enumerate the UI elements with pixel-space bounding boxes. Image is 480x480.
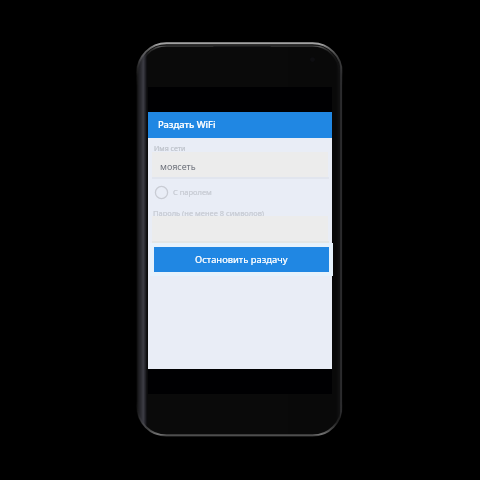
staticText: Остановить раздачу xyxy=(195,253,288,266)
staticText: Имя сети xyxy=(154,144,186,154)
button[interactable]: Остановить раздачу xyxy=(154,247,329,272)
staticText: Пароль (не менее 8 символов) xyxy=(153,208,265,218)
button[interactable]: С паролем xyxy=(154,185,212,200)
staticText: Раздать WiFi xyxy=(158,118,216,131)
staticText: С паролем xyxy=(173,187,212,197)
staticText: моясеть xyxy=(160,160,196,172)
button[interactable]: Раздать WiFi xyxy=(148,112,332,138)
button[interactable]: моясеть xyxy=(152,152,328,177)
